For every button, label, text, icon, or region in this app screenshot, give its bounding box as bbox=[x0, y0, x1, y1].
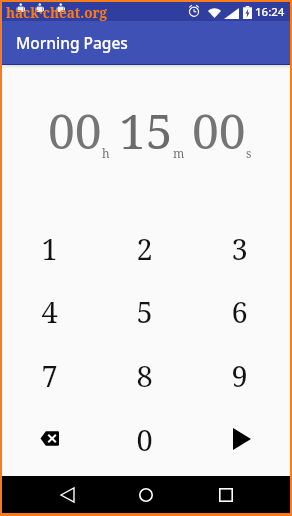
staticText: m bbox=[173, 145, 185, 161]
button[interactable]: Back bbox=[47, 476, 87, 513]
button[interactable]: Backspace bbox=[2, 407, 97, 471]
staticText: 3 bbox=[231, 229, 248, 268]
button[interactable]: Recent apps bbox=[206, 476, 246, 513]
button[interactable]: 6 bbox=[192, 280, 287, 343]
button[interactable]: 7 bbox=[2, 343, 97, 407]
staticText: 8 bbox=[136, 356, 153, 395]
staticText: 00 bbox=[192, 98, 246, 163]
button[interactable]: 0 bbox=[97, 407, 192, 471]
staticText: hack·cheat.org bbox=[6, 4, 108, 22]
staticText: 0 bbox=[136, 420, 153, 459]
staticText: 6 bbox=[231, 292, 248, 331]
button[interactable]: 4 bbox=[2, 280, 97, 343]
staticText: 16:24 bbox=[255, 4, 285, 20]
button[interactable]: 2 bbox=[97, 217, 192, 280]
button[interactable]: Start timer bbox=[192, 407, 287, 471]
staticText: 9 bbox=[231, 356, 248, 395]
staticText: 15 bbox=[119, 98, 173, 163]
button[interactable]: Home bbox=[126, 476, 166, 513]
staticText: 2 bbox=[136, 229, 153, 268]
staticText: h bbox=[102, 145, 110, 161]
staticText: 4 bbox=[41, 292, 58, 331]
staticText: 00 bbox=[48, 98, 102, 163]
staticText: s bbox=[246, 145, 252, 161]
button[interactable]: 3 bbox=[192, 217, 287, 280]
staticText: 7 bbox=[41, 356, 58, 395]
button[interactable]: 8 bbox=[97, 343, 192, 407]
button[interactable]: 5 bbox=[97, 280, 192, 343]
button[interactable]: 9 bbox=[192, 343, 287, 407]
staticText: Morning Pages bbox=[16, 32, 128, 53]
button[interactable]: 1 bbox=[2, 217, 97, 280]
staticText: 5 bbox=[136, 292, 153, 331]
staticText: 1 bbox=[41, 229, 58, 268]
